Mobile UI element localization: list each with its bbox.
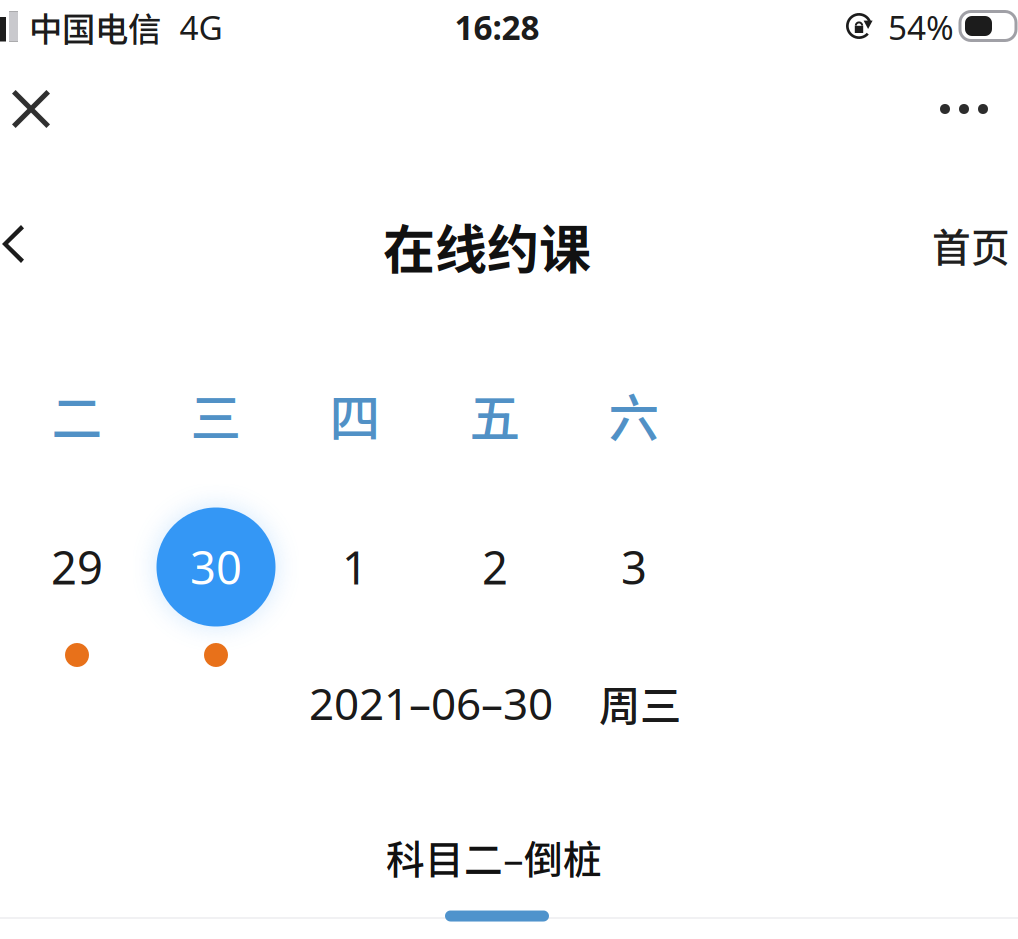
staticText: 在线约课 <box>383 208 591 284</box>
staticText: 三 <box>190 378 241 452</box>
staticText: 首页 <box>932 217 1010 273</box>
button[interactable]: 四 <box>290 369 420 669</box>
button[interactable]: 五 <box>430 369 560 669</box>
staticText: 16:28 <box>454 5 539 49</box>
staticText: 4G <box>179 5 222 49</box>
button[interactable]: 六 <box>569 369 699 669</box>
staticText: 周三 <box>599 673 681 733</box>
button[interactable]: Back <box>0 201 62 287</box>
staticText: 2 <box>482 537 508 597</box>
button[interactable]: 三 <box>151 369 281 669</box>
staticText: 四 <box>329 378 380 452</box>
staticText: 1 <box>342 537 368 597</box>
staticText: 2021–06–30 <box>309 674 553 732</box>
staticText: 二 <box>51 378 102 452</box>
button[interactable]: Close <box>0 70 74 148</box>
staticText: 3 <box>621 537 647 597</box>
button[interactable]: More options <box>921 70 1007 148</box>
staticText: 科目二–倒桩 <box>386 829 602 885</box>
staticText: 29 <box>51 537 103 597</box>
staticText: 54% <box>888 5 954 49</box>
button[interactable]: 二 <box>12 369 142 669</box>
staticText: 30 <box>190 537 242 597</box>
staticText: 五 <box>469 378 520 452</box>
button[interactable]: 首页 <box>916 202 1018 288</box>
staticText: 中国电信 <box>29 3 161 51</box>
staticText: 六 <box>608 378 659 452</box>
